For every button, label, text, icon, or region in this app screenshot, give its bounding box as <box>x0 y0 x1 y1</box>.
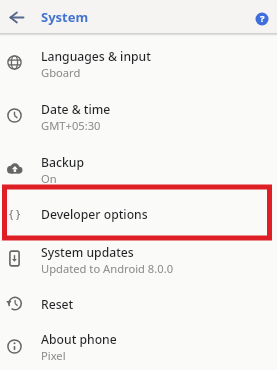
button[interactable]: Languages & input <box>0 36 277 89</box>
button[interactable]: ? <box>247 2 277 35</box>
staticText: Reset <box>41 296 74 313</box>
staticText: System updates <box>41 244 134 261</box>
staticText: Date & time <box>41 101 111 118</box>
button[interactable]: { } <box>0 195 277 232</box>
staticText: { } <box>9 206 21 221</box>
staticText: Gboard <box>41 65 81 80</box>
staticText: On <box>41 171 57 186</box>
button[interactable]: Date & time <box>0 89 277 142</box>
button[interactable]: About phone <box>0 322 277 370</box>
staticText: Pixel <box>41 348 66 363</box>
button[interactable]: Reset <box>0 285 277 322</box>
staticText: About phone <box>41 331 117 348</box>
staticText: GMT+05:30 <box>41 118 101 133</box>
staticText: ? <box>260 12 265 25</box>
staticText: Updated to Android 8.0.0 <box>41 261 174 276</box>
button[interactable] <box>0 0 33 33</box>
staticText: Backup <box>41 154 84 171</box>
button[interactable]: System updates <box>0 232 277 285</box>
staticText: System <box>41 8 89 26</box>
staticText: Developer options <box>41 206 148 223</box>
button[interactable]: Backup <box>0 142 277 195</box>
staticText: Languages & input <box>41 48 151 65</box>
